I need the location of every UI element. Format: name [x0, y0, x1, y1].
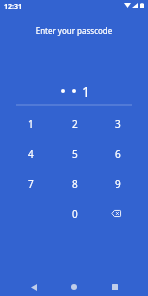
button[interactable]: Back	[22, 275, 46, 296]
staticText: 2	[72, 117, 78, 131]
button[interactable]: 3	[96, 109, 139, 139]
staticText: 3	[115, 117, 121, 131]
staticText: 9	[115, 177, 121, 191]
button[interactable]: 4	[9, 139, 53, 169]
button[interactable]: 5	[53, 139, 96, 169]
button[interactable]: 9	[96, 169, 139, 199]
staticText: 4	[28, 147, 34, 161]
button[interactable]: Home	[62, 275, 86, 296]
staticText: 1	[82, 82, 91, 100]
staticText: 5	[72, 147, 78, 161]
staticText: 1	[28, 117, 34, 131]
button[interactable]: 8	[53, 169, 96, 199]
staticText: 12:31	[4, 2, 22, 12]
button[interactable]: 0	[53, 199, 96, 229]
staticText: 8	[72, 177, 78, 191]
button[interactable]: 2	[53, 109, 96, 139]
button[interactable]: 7	[9, 169, 53, 199]
button[interactable]: 1	[9, 109, 53, 139]
button[interactable]: Recents	[103, 275, 127, 296]
staticText: 6	[115, 147, 121, 161]
staticText: 0	[72, 207, 78, 221]
button[interactable]: 6	[96, 139, 139, 169]
staticText: Enter your passcode	[0, 25, 148, 36]
button[interactable]: Delete	[96, 199, 139, 229]
staticText: 7	[28, 177, 34, 191]
